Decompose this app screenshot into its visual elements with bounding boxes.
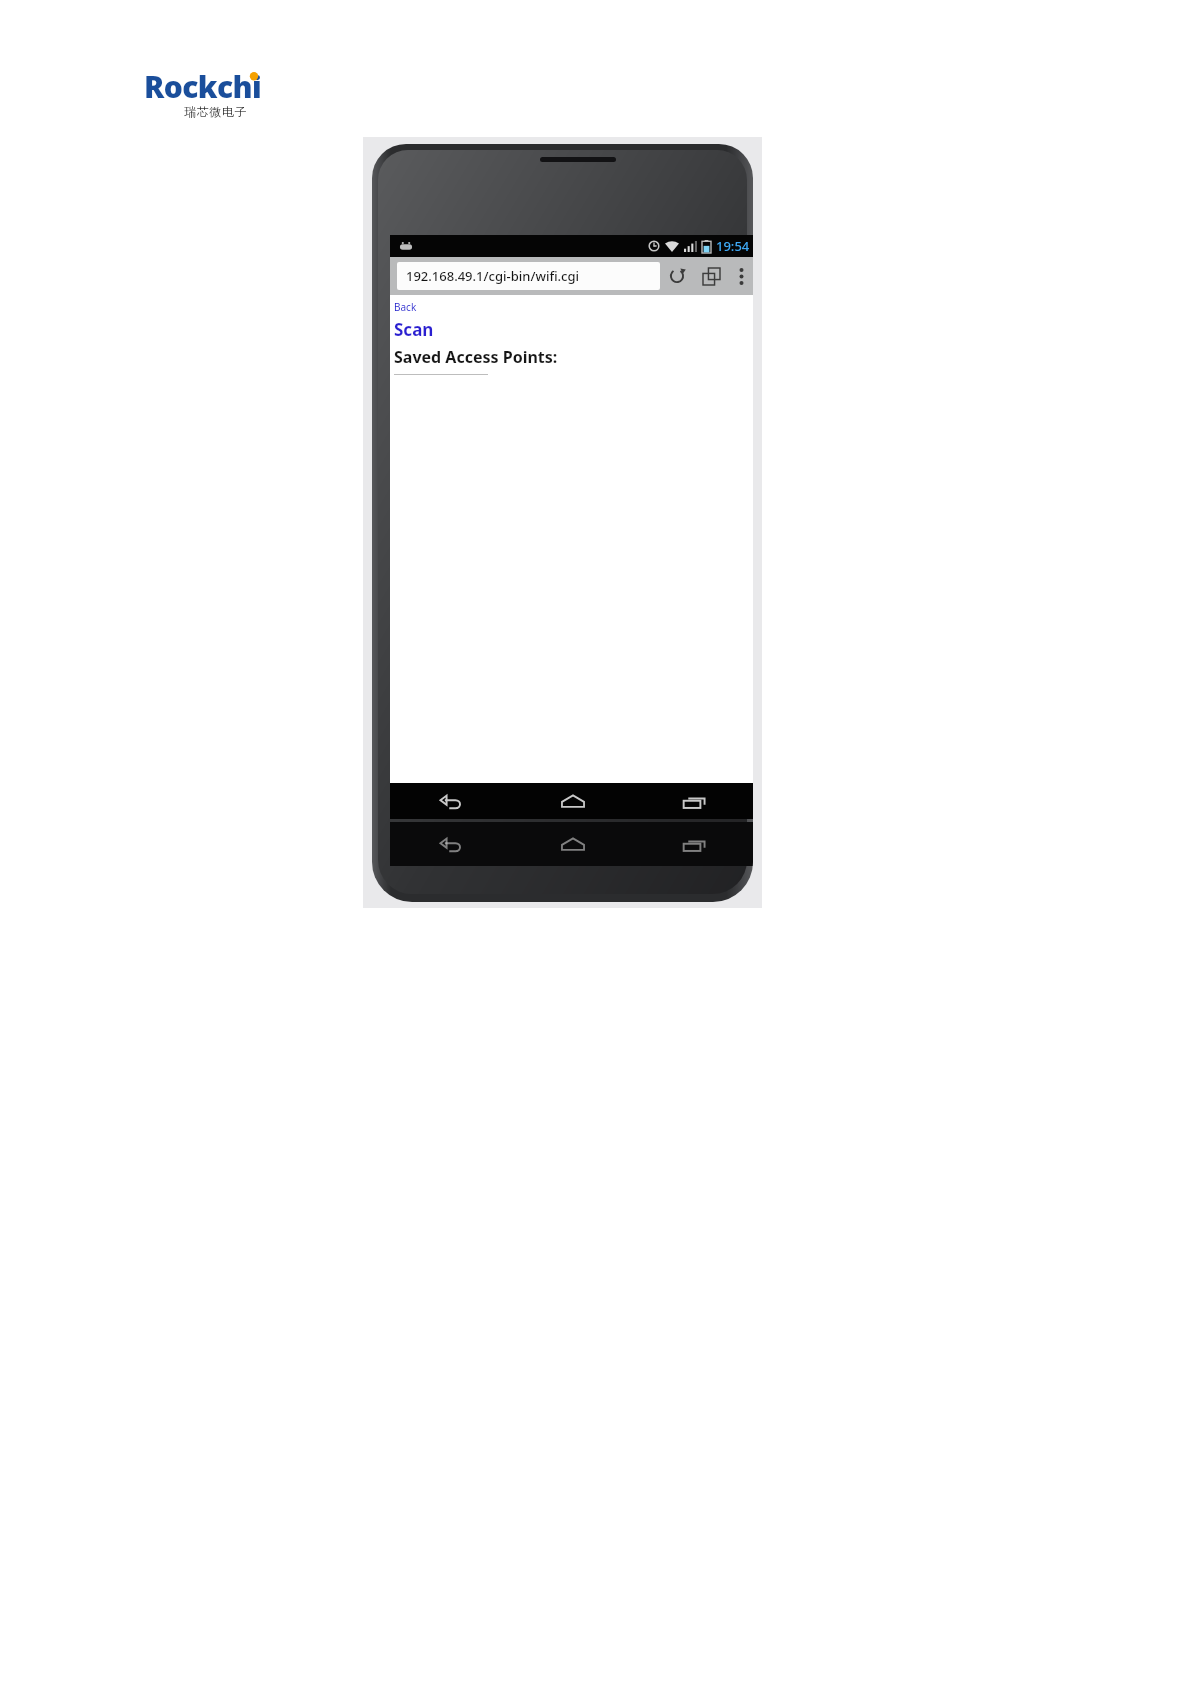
staticText: 192.168.49.1/cgi-bin/wifi.cgi	[406, 267, 580, 285]
button[interactable]: Back	[394, 300, 417, 314]
button[interactable]: Home	[512, 822, 633, 866]
button[interactable]: Scan	[394, 318, 434, 341]
button[interactable]: Recent apps	[633, 822, 753, 866]
staticText: 瑞芯微电子	[184, 104, 247, 119]
button[interactable]: Recent apps	[633, 783, 753, 819]
button[interactable]: Reload	[660, 257, 694, 295]
button[interactable]: 192.168.49.1/cgi-bin/wifi.cgi	[397, 262, 660, 290]
staticText: 19:54	[716, 237, 750, 255]
button[interactable]: Tabs	[694, 257, 728, 295]
button[interactable]: Back	[390, 822, 512, 866]
button[interactable]: Back	[390, 783, 512, 819]
staticText: Scan	[394, 318, 434, 341]
staticText: Back	[394, 300, 417, 314]
button[interactable]: Home	[512, 783, 633, 819]
staticText: Rockchip	[144, 66, 270, 122]
staticText: Saved Access Points:	[394, 346, 558, 368]
button[interactable]: More options	[728, 257, 753, 295]
